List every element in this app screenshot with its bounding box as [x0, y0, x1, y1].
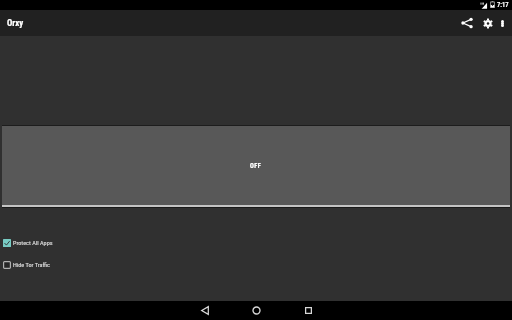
staticText: Protect All Apps — [13, 239, 53, 246]
button[interactable]: Back — [191, 302, 218, 318]
staticText: Orxy — [7, 18, 24, 28]
staticText: OFF — [250, 162, 262, 169]
staticText: 7:17 — [497, 1, 509, 9]
button[interactable]: Protect All Apps — [0, 236, 512, 250]
button[interactable]: More options — [495, 13, 509, 33]
staticText: Hide Tor Traffic — [13, 261, 50, 268]
button[interactable]: Hide Tor Traffic — [0, 258, 512, 272]
button[interactable]: Settings — [478, 13, 498, 33]
button[interactable]: OFF — [2, 126, 510, 205]
button[interactable]: Share — [455, 13, 479, 33]
button[interactable]: Recents — [295, 302, 321, 318]
button[interactable]: Home — [243, 302, 269, 318]
